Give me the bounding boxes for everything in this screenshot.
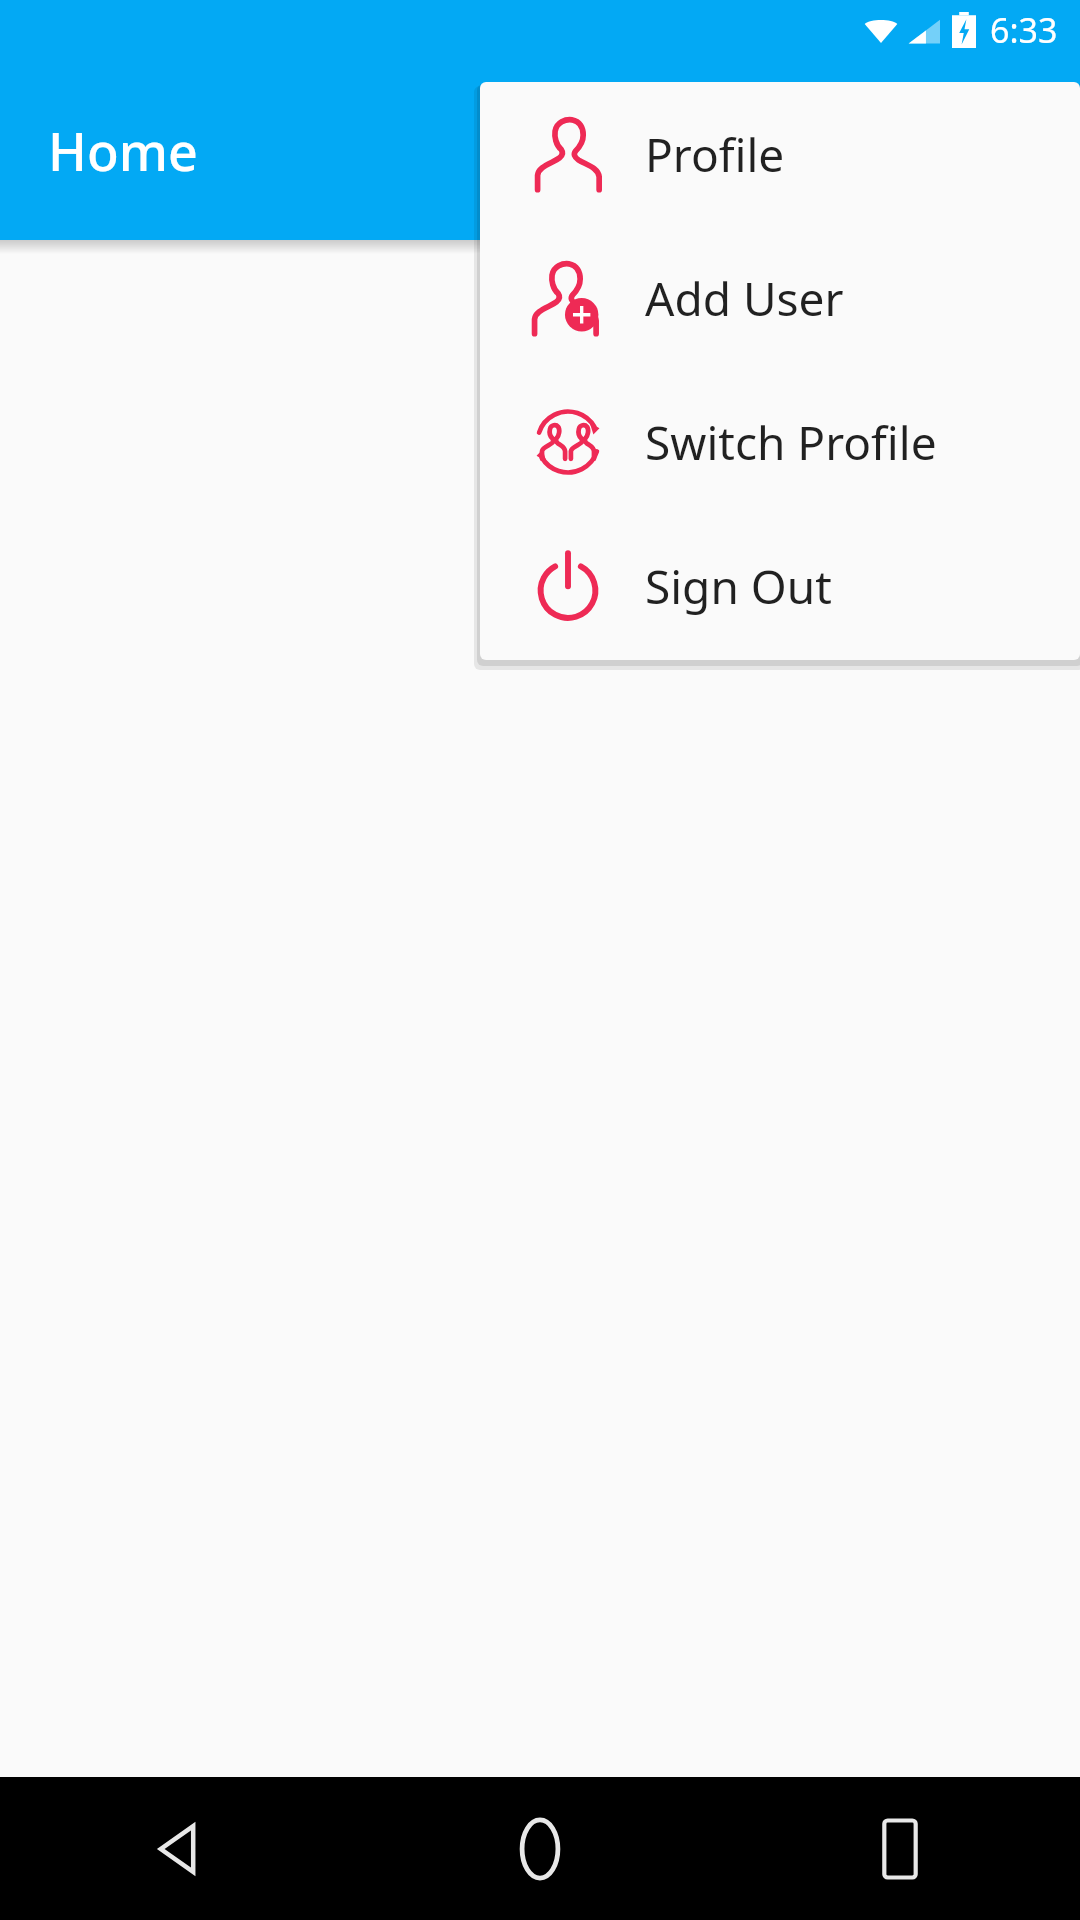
button[interactable]: Add User: [480, 226, 1080, 370]
button[interactable]: Back: [0, 1777, 360, 1920]
staticText: Profile: [645, 123, 785, 186]
button[interactable]: Recent apps: [720, 1777, 1080, 1920]
staticText: Add User: [645, 267, 844, 330]
button[interactable]: Sign Out: [480, 514, 1080, 658]
button[interactable]: Profile: [480, 82, 1080, 226]
staticText: Switch Profile: [645, 411, 937, 474]
button[interactable]: Switch Profile: [480, 370, 1080, 514]
button[interactable]: Home: [360, 1777, 720, 1920]
staticText: 6:33: [990, 7, 1058, 53]
staticText: Sign Out: [645, 555, 832, 618]
staticText: Home: [48, 115, 198, 186]
